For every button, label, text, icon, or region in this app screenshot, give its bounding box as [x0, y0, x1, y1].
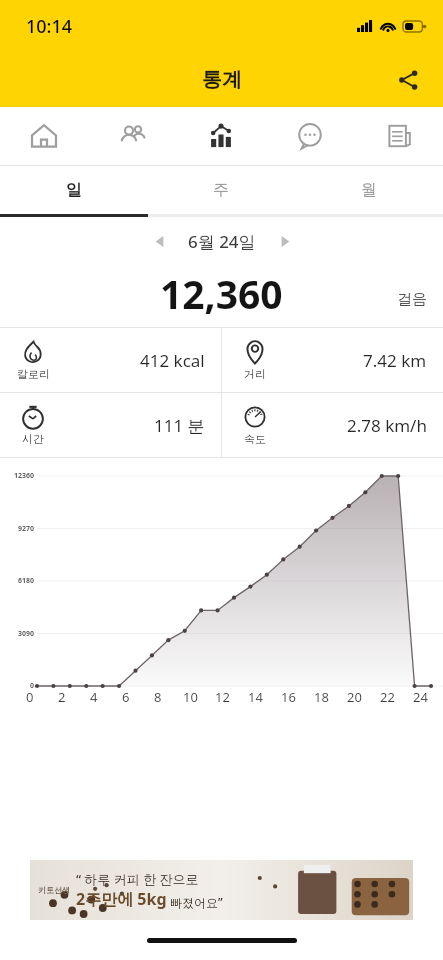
staticText: 6180	[0, 576, 34, 586]
button[interactable]: Statistics	[176, 107, 265, 165]
button[interactable]: Home	[0, 107, 88, 165]
staticText: 통계	[202, 67, 242, 92]
staticText: 4	[90, 688, 98, 706]
staticText: 걸음	[397, 290, 427, 309]
button[interactable]: 거리	[222, 328, 443, 392]
button[interactable]: Share	[385, 57, 431, 103]
button[interactable]: 월	[295, 166, 443, 214]
staticText: 6	[122, 688, 130, 706]
staticText: 111 분	[154, 414, 205, 437]
staticText: 12,360	[160, 267, 283, 320]
button[interactable]: 시간	[0, 393, 221, 457]
staticText: 6월 24일	[188, 230, 256, 253]
staticText: 14	[248, 688, 263, 706]
staticText: 빠졌어요”	[167, 894, 223, 910]
staticText: 일	[66, 180, 82, 200]
staticText: 거리	[244, 367, 266, 381]
staticText: 22	[380, 688, 395, 706]
staticText: 16	[281, 688, 296, 706]
staticText: 412 kcal	[140, 349, 205, 372]
staticText: 2	[58, 688, 66, 706]
staticText: 20	[347, 688, 362, 706]
staticText: 키토선생	[38, 885, 70, 895]
staticText: 7.42 km	[363, 349, 427, 372]
button[interactable]: Friends	[88, 107, 176, 165]
staticText: 0	[26, 688, 34, 706]
staticText: 2주만에 5kg	[76, 888, 167, 910]
button[interactable]: Next day	[268, 224, 302, 258]
button[interactable]: Previous day	[142, 224, 176, 258]
staticText: 8	[154, 688, 162, 706]
staticText: 9270	[0, 524, 34, 534]
staticText: 10	[183, 688, 198, 706]
staticText: 시간	[22, 432, 44, 446]
button[interactable]: 칼로리	[0, 328, 221, 392]
button[interactable]: 키토선생	[30, 860, 413, 920]
staticText: 월	[361, 180, 377, 200]
button[interactable]: Chat	[265, 107, 354, 165]
staticText: 12	[215, 688, 230, 706]
staticText: 0	[0, 681, 34, 691]
button[interactable]: 주	[147, 166, 295, 214]
staticText: 3090	[0, 629, 34, 639]
staticText: 12360	[0, 471, 34, 481]
staticText: 10:14	[26, 14, 73, 39]
staticText: 칼로리	[17, 367, 50, 381]
staticText: “ 하루 커피 한 잔으로	[76, 870, 199, 888]
staticText: 주	[213, 180, 229, 200]
staticText: 속도	[244, 432, 266, 446]
staticText: 2.78 km/h	[347, 414, 427, 437]
staticText: 24	[413, 688, 428, 706]
button[interactable]: News	[354, 107, 443, 165]
button[interactable]: 일	[0, 166, 147, 214]
button[interactable]: 속도	[222, 393, 443, 457]
staticText: 18	[314, 688, 329, 706]
